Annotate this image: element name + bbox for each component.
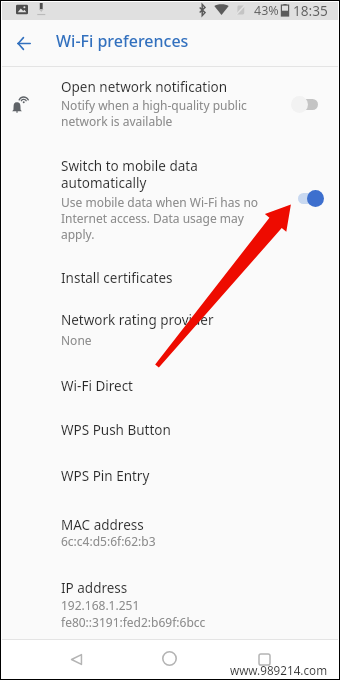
button[interactable]: MAC address — [2, 494, 338, 548]
button[interactable]: WPS Push Button — [2, 400, 338, 446]
staticText: Notify when a high-quality public — [61, 97, 247, 113]
staticText: Wi-Fi preferences — [56, 30, 189, 52]
button[interactable]: Back — [6, 25, 42, 61]
button[interactable]: Wi-Fi Direct — [2, 354, 338, 398]
staticText: 192.168.1.251 — [61, 597, 140, 613]
button[interactable]: Open network notification — [2, 70, 338, 134]
staticText: Use mobile data when Wi-Fi has no — [61, 194, 259, 210]
button[interactable]: Switch to mobile data — [2, 148, 338, 248]
staticText: www.989214.com — [230, 662, 328, 678]
staticText: 18:35 — [293, 1, 328, 19]
staticText: fe80::3191:fed2:b69f:6bcc — [61, 614, 206, 630]
staticText: network is available — [61, 113, 173, 129]
staticText: 6c:c4:d5:6f:62:b3 — [61, 533, 156, 549]
staticText: Internet access. Data usage may — [61, 210, 244, 226]
staticText: Wi-Fi Direct — [61, 377, 133, 395]
staticText: Network rating provider — [61, 311, 214, 329]
staticText: Switch to mobile data — [61, 157, 198, 175]
staticText: WPS Push Button — [61, 421, 171, 439]
button[interactable]: Recent apps — [248, 643, 280, 675]
staticText: Install certificates — [61, 269, 173, 287]
staticText: WPS Pin Entry — [61, 467, 150, 485]
staticText: apply. — [61, 226, 95, 242]
staticText: Open network notification — [61, 78, 228, 96]
staticText: IP address — [61, 579, 128, 597]
button[interactable]: Home — [153, 642, 185, 674]
button[interactable]: IP address — [2, 558, 338, 634]
button[interactable]: Network rating provider — [2, 301, 338, 347]
button[interactable]: Back — [60, 643, 92, 675]
staticText: 43% — [254, 2, 279, 19]
staticText: MAC address — [61, 516, 144, 534]
staticText: None — [61, 332, 92, 348]
staticText: automatically — [61, 174, 147, 192]
button[interactable]: Install certificates — [2, 257, 338, 301]
button[interactable]: WPS Pin Entry — [2, 446, 338, 492]
